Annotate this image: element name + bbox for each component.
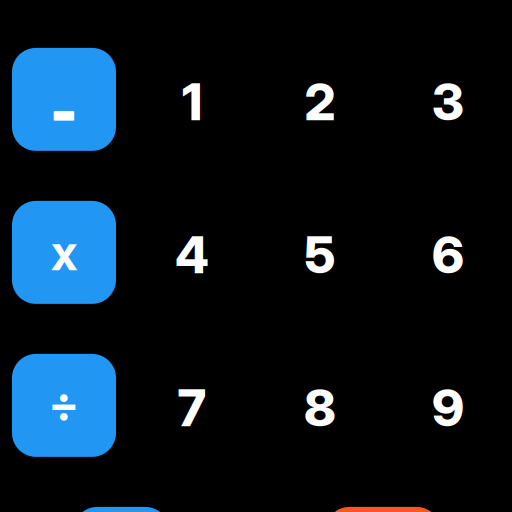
- staticText: 8: [304, 377, 336, 438]
- button[interactable]: 8: [256, 356, 384, 459]
- button[interactable]: 9: [384, 356, 512, 459]
- button[interactable]: 1: [128, 50, 256, 153]
- button[interactable]: Minus: [12, 48, 116, 151]
- staticText: 9: [432, 377, 464, 438]
- button[interactable]: 5: [256, 203, 384, 306]
- staticText: x: [51, 223, 77, 282]
- staticText: 6: [432, 224, 464, 285]
- button[interactable]: Clear: [325, 507, 440, 512]
- staticText: 7: [177, 377, 206, 438]
- button[interactable]: 4: [128, 203, 256, 306]
- button[interactable]: 6: [384, 203, 512, 306]
- button[interactable]: 2: [256, 50, 384, 153]
- button[interactable]: Multiply: [12, 201, 116, 304]
- staticText: 1: [182, 71, 202, 132]
- staticText: 5: [304, 224, 335, 285]
- staticText: 4: [175, 224, 209, 285]
- staticText: ÷: [48, 376, 79, 432]
- staticText: 3: [432, 71, 464, 132]
- button[interactable]: Divide: [12, 354, 116, 457]
- button[interactable]: 7: [128, 356, 256, 459]
- button[interactable]: Plus: [73, 507, 169, 512]
- button[interactable]: 3: [384, 50, 512, 153]
- staticText: 2: [304, 71, 335, 132]
